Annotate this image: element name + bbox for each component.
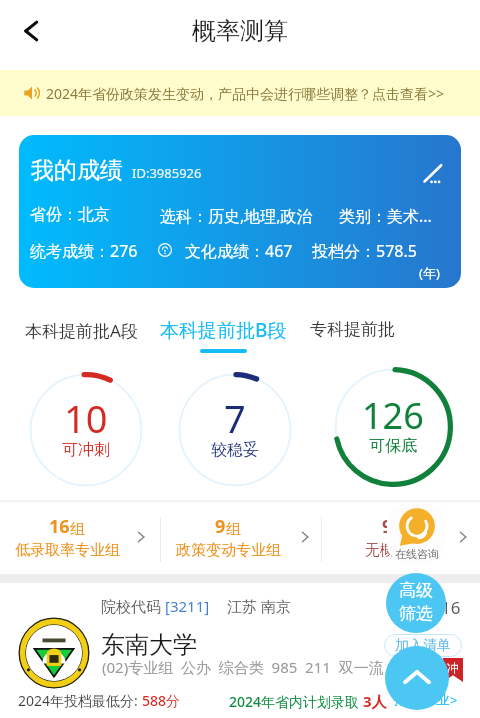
staticText: 2024年省份政策发生变动，产品中会进行哪些调整？点击查看>> [46,84,445,103]
staticText: 本科提前批A段 [25,319,138,342]
button[interactable]: Scroll to top [385,646,449,710]
staticText: 7 [224,392,246,444]
staticText: 588分 [142,691,181,710]
staticText: 可冲刺 [62,440,110,460]
staticText: 院校代码 [101,596,165,616]
staticText: 冲 [447,660,459,675]
button[interactable]: 2024年省份政策发生变动，产品中会进行哪些调整？点击查看>> [0,70,480,116]
button[interactable]: 本科提前批A段 [25,319,138,342]
button[interactable]: 9 [170,512,318,562]
button[interactable]: 7 [177,372,293,488]
button[interactable]: 9 [330,512,476,562]
button[interactable]: Back [10,10,52,52]
staticText: 本科提前批B段 [160,317,287,343]
staticText: 组 [226,520,241,539]
staticText: 统考成绩：276 [30,240,138,262]
staticText: 高级 [399,580,433,601]
staticText: 筛选 [399,603,433,624]
staticText: 16 [49,514,70,539]
button[interactable]: 126 [333,367,453,487]
staticText: 概率测算 [192,16,288,46]
staticText: 3人 [363,691,387,711]
staticText: 专科提前批 [310,319,395,340]
staticText: 类别：美术... [339,205,432,227]
button[interactable]: 在线咨询 [387,504,446,562]
staticText: 10 [64,392,108,444]
staticText: 无概率 [365,541,410,560]
button[interactable]: 加入清单 [384,634,462,657]
staticText: 招生专业 [394,691,450,709]
staticText: 政策变动专业组 [176,541,281,560]
staticText: 126 [362,391,424,440]
staticText: 选科：历史,地理,政治 [160,205,313,227]
staticText: > [450,691,458,709]
staticText: 东南大学 [101,630,197,660]
staticText: 可保底 [369,436,417,456]
staticText: 组 [70,520,85,539]
staticText: ID:3985926 [132,164,202,182]
button[interactable]: 专科提前批 [310,319,395,340]
button[interactable]: 我的成绩 [19,135,461,288]
staticText: 省份：北京 [30,205,110,225]
staticText: 2024年投档最低分: [18,691,142,710]
staticText: (年) [419,264,440,282]
staticText: 在线咨询 [395,547,439,561]
staticText: 排名： [393,598,441,618]
staticText: 我的成绩 [31,156,123,185]
staticText: 文化成绩：467 [185,240,293,262]
button[interactable]: 10 [28,372,144,488]
staticText: (02)专业组 公办 综合类 985 211 双一流 [102,657,384,677]
button[interactable]: 招生专业 [394,691,458,709]
button[interactable]: Edit [415,157,449,191]
staticText: 较稳妥 [211,440,259,460]
staticText: [3211] [165,596,210,616]
staticText: 16 [441,596,461,619]
button[interactable]: 16 [12,512,154,562]
staticText: 2024年省内计划录取 [229,692,363,711]
button[interactable]: 高级 [386,573,446,633]
staticText: 9 [382,514,393,539]
staticText: 加入清单 [395,637,451,655]
button[interactable]: 本科提前批B段 [160,317,287,353]
staticText: 投档分：578.5 [312,240,417,262]
staticText: 9 [215,514,226,539]
staticText: 低录取率专业组 [15,541,120,560]
staticText: ?% [421,660,444,683]
staticText: 江苏 南京 [227,596,291,616]
